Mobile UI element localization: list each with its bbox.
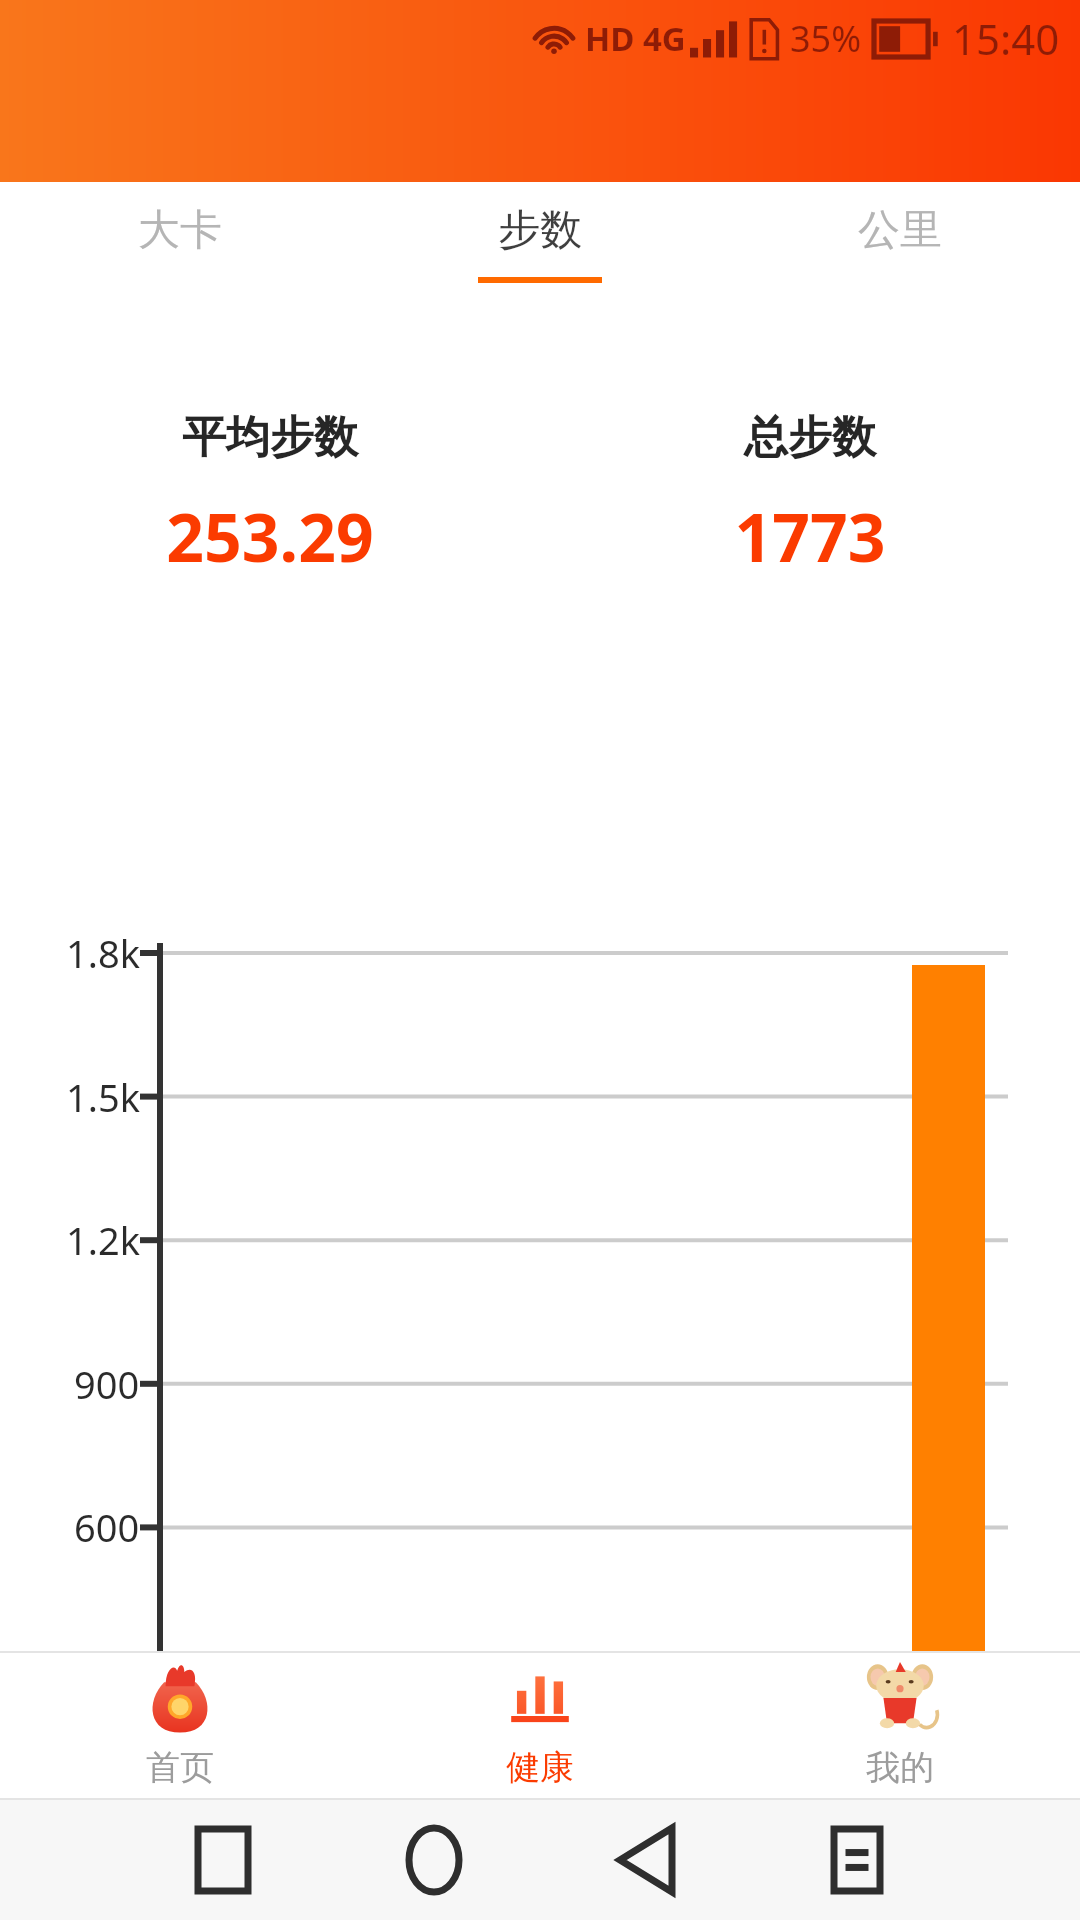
staticText: 步数 [498, 204, 582, 257]
other: 首页 [144, 1662, 216, 1734]
button[interactable]: Back [598, 1812, 694, 1908]
staticText: 600 [74, 1501, 140, 1553]
staticText: 35% [790, 14, 862, 63]
button[interactable]: 我的 [720, 1653, 1080, 1798]
button[interactable]: 公里 [720, 182, 1080, 290]
staticText: 253.29 [166, 491, 374, 581]
button[interactable]: Recents [175, 1812, 271, 1908]
staticText: 健康 [506, 1746, 574, 1789]
staticText: 1773 [734, 491, 886, 581]
other: 健康 [504, 1662, 576, 1734]
button[interactable]: 健康 [360, 1653, 720, 1798]
staticText: 我的 [866, 1746, 934, 1789]
staticText: 1.8k [66, 927, 140, 979]
button[interactable]: 步数 [360, 182, 720, 290]
button[interactable]: Menu [809, 1812, 905, 1908]
staticText: 1.5k [66, 1071, 140, 1123]
other: 我的 [864, 1662, 936, 1734]
button[interactable]: 大卡 [0, 182, 360, 290]
staticText: 首页 [146, 1746, 214, 1789]
staticText: 大卡 [138, 204, 222, 257]
staticText: 总步数 [744, 410, 876, 465]
staticText: 平均步数 [182, 410, 358, 465]
button[interactable]: Home [386, 1812, 482, 1908]
staticText: 15:40 [952, 10, 1060, 67]
button[interactable]: 总步数 [540, 410, 1080, 581]
staticText: 900 [74, 1358, 140, 1410]
button[interactable]: 首页 [0, 1653, 360, 1798]
staticText: 公里 [858, 204, 942, 257]
staticText: 1.2k [66, 1214, 140, 1266]
button[interactable]: 平均步数 [0, 410, 540, 581]
staticText: HD 4G [585, 16, 686, 61]
